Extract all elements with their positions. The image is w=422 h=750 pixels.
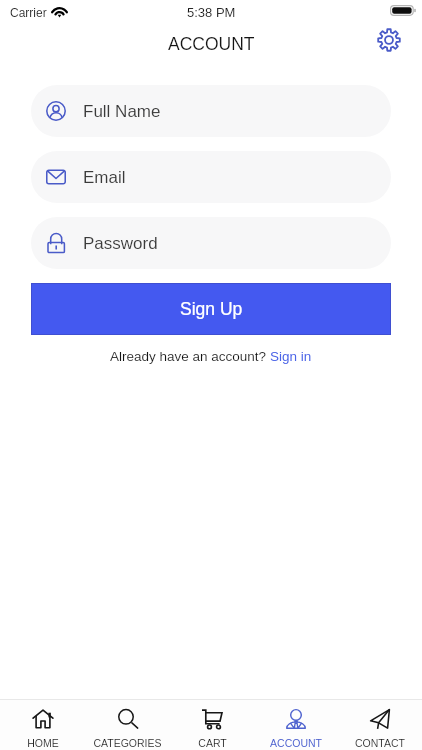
button[interactable]: CONTACT [338, 700, 422, 750]
staticText: CATEGORIES [93, 737, 162, 749]
button[interactable]: Settings [375, 26, 403, 54]
button[interactable]: Password [31, 217, 391, 269]
staticText: Full Name [83, 102, 161, 121]
staticText: CONTACT [355, 737, 405, 749]
button[interactable]: CART [170, 700, 254, 750]
staticText: Carrier [10, 6, 47, 19]
staticText: HOME [27, 737, 59, 749]
staticText: 5:38 PM [187, 5, 236, 20]
staticText: CART [198, 737, 227, 749]
button[interactable]: CATEGORIES [85, 700, 170, 750]
staticText: Password [83, 234, 158, 253]
staticText: ACCOUNT [168, 34, 255, 54]
staticText: Already have an account? [110, 349, 270, 364]
button[interactable]: Sign Up [31, 283, 391, 335]
button[interactable]: ACCOUNT [254, 700, 338, 750]
button[interactable]: Sign in [270, 349, 312, 364]
staticText: ACCOUNT [270, 737, 322, 749]
staticText: Sign Up [180, 299, 243, 319]
button[interactable]: HOME [0, 700, 85, 750]
button[interactable]: Email [31, 151, 391, 203]
staticText: Email [83, 168, 126, 187]
button[interactable]: Full Name [31, 85, 391, 137]
